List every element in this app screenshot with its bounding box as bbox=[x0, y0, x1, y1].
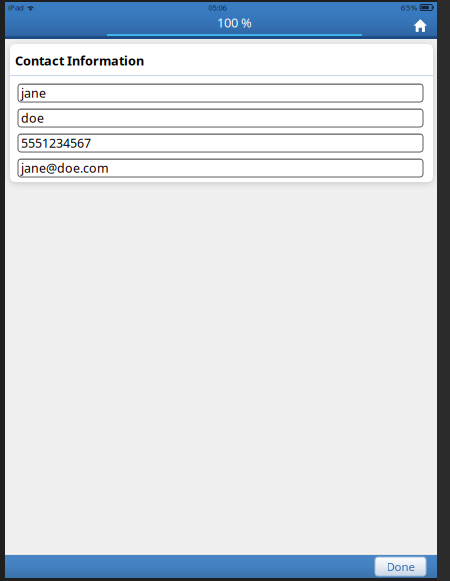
button[interactable]: jane@doe.com bbox=[18, 159, 423, 177]
staticText: 5551234567 bbox=[21, 135, 91, 151]
staticText: 100 % bbox=[217, 14, 252, 31]
staticText: Done bbox=[386, 559, 414, 574]
button[interactable]: 5551234567 bbox=[18, 134, 423, 152]
button[interactable]: Done bbox=[375, 557, 426, 576]
staticText: iPad bbox=[8, 2, 24, 13]
staticText: 05:06 bbox=[209, 2, 227, 13]
staticText: jane bbox=[21, 85, 46, 101]
button[interactable]: Home bbox=[414, 17, 427, 30]
button[interactable]: doe bbox=[18, 109, 423, 127]
staticText: 65% bbox=[401, 2, 418, 13]
staticText: Contact Information bbox=[15, 52, 144, 69]
button[interactable]: jane bbox=[18, 84, 423, 102]
staticText: jane@doe.com bbox=[21, 160, 109, 176]
staticText: doe bbox=[21, 110, 44, 126]
